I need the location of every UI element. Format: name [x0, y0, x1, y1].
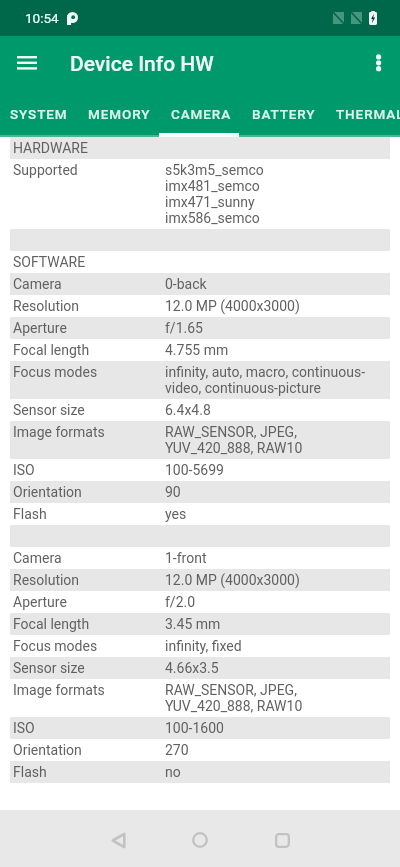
staticText: f/1.65 — [165, 320, 203, 336]
staticText: 10:54 — [25, 10, 59, 26]
staticText: 12.0 MP (4000x3000) — [165, 572, 300, 588]
staticText: Orientation — [13, 484, 165, 500]
button[interactable]: SOFTWARE — [10, 251, 390, 273]
button[interactable]: Flash — [10, 503, 390, 525]
staticText: Flash — [13, 506, 165, 522]
button[interactable]: Focus modes — [10, 361, 390, 399]
button[interactable]: Resolution — [10, 569, 390, 591]
staticText: Flash — [13, 764, 165, 780]
staticText: yes — [165, 506, 187, 522]
staticText: 12.0 MP (4000x3000) — [165, 298, 300, 314]
staticText: Resolution — [13, 572, 165, 588]
button[interactable]: THERMAL — [326, 93, 400, 137]
button[interactable]: Orientation — [10, 481, 390, 503]
button[interactable]: Aperture — [10, 591, 390, 613]
staticText: f/2.0 — [165, 594, 196, 610]
staticText: BATTERY — [252, 106, 316, 122]
button[interactable]: MEMORY — [78, 93, 161, 137]
button[interactable]: Aperture — [10, 317, 390, 339]
staticText: Resolution — [13, 298, 165, 314]
button[interactable]: BATTERY — [242, 93, 326, 137]
staticText: Camera — [13, 276, 165, 292]
button[interactable]: More options — [356, 43, 400, 87]
button[interactable]: ISO — [10, 459, 390, 481]
staticText: infinity, auto, macro, continuous- video… — [165, 364, 366, 396]
staticText: infinity, fixed — [165, 638, 242, 654]
staticText: ISO — [13, 462, 165, 478]
staticText: 90 — [165, 484, 181, 500]
button[interactable]: Image formats — [10, 421, 390, 459]
button[interactable]: Focal length — [10, 339, 390, 361]
button[interactable]: Open navigation drawer — [5, 43, 49, 87]
staticText: CAMERA — [171, 106, 232, 122]
button[interactable]: Resolution — [10, 295, 390, 317]
staticText: 100-1600 — [165, 720, 224, 736]
staticText: Device Info HW — [70, 52, 214, 77]
staticText: Sensor size — [13, 660, 165, 676]
staticText: Aperture — [13, 320, 165, 336]
staticText: 3.45 mm — [165, 616, 221, 632]
button[interactable]: Sensor size — [10, 657, 390, 679]
staticText: RAW_SENSOR, JPEG, YUV_420_888, RAW10 — [165, 682, 303, 714]
staticText: Supported — [13, 162, 165, 178]
staticText: Orientation — [13, 742, 165, 758]
button[interactable]: Home — [178, 818, 222, 862]
staticText: Image formats — [13, 682, 165, 698]
button[interactable]: Back — [96, 818, 140, 862]
staticText: Sensor size — [13, 402, 165, 418]
staticText: s5k3m5_semco imx481_semco imx471_sunny i… — [165, 162, 264, 226]
button[interactable]: Camera — [10, 547, 390, 569]
button[interactable]: Flash — [10, 761, 390, 783]
button[interactable]: Sensor size — [10, 399, 390, 421]
staticText: 4.66x3.5 — [165, 660, 219, 676]
button[interactable]: Recent apps — [260, 818, 304, 862]
staticText: Image formats — [13, 424, 165, 440]
staticText: THERMAL — [336, 106, 400, 122]
button[interactable]: Focal length — [10, 613, 390, 635]
button[interactable]: Supported — [10, 159, 390, 229]
staticText: 4.755 mm — [165, 342, 229, 358]
staticText: no — [165, 764, 181, 780]
staticText: RAW_SENSOR, JPEG, YUV_420_888, RAW10 — [165, 424, 303, 456]
button[interactable]: SYSTEM — [0, 93, 78, 137]
staticText: 6.4x4.8 — [165, 402, 211, 418]
staticText: SYSTEM — [10, 106, 68, 122]
staticText: MEMORY — [88, 106, 151, 122]
button[interactable]: Orientation — [10, 739, 390, 761]
staticText: SOFTWARE — [13, 254, 165, 270]
staticText: Focus modes — [13, 638, 165, 654]
button[interactable]: Focus modes — [10, 635, 390, 657]
button[interactable]: Camera — [10, 273, 390, 295]
staticText: Focal length — [13, 616, 165, 632]
button[interactable]: Image formats — [10, 679, 390, 717]
button[interactable]: HARDWARE — [10, 137, 390, 159]
staticText: 1-front — [165, 550, 207, 566]
staticText: 100-5699 — [165, 462, 224, 478]
staticText: Focus modes — [13, 364, 165, 380]
button[interactable]: CAMERA — [161, 93, 242, 137]
staticText: 270 — [165, 742, 189, 758]
staticText: ISO — [13, 720, 165, 736]
staticText: Aperture — [13, 594, 165, 610]
staticText: Focal length — [13, 342, 165, 358]
staticText: HARDWARE — [13, 140, 165, 156]
staticText: 0-back — [165, 276, 207, 292]
staticText: Camera — [13, 550, 165, 566]
button[interactable]: ISO — [10, 717, 390, 739]
